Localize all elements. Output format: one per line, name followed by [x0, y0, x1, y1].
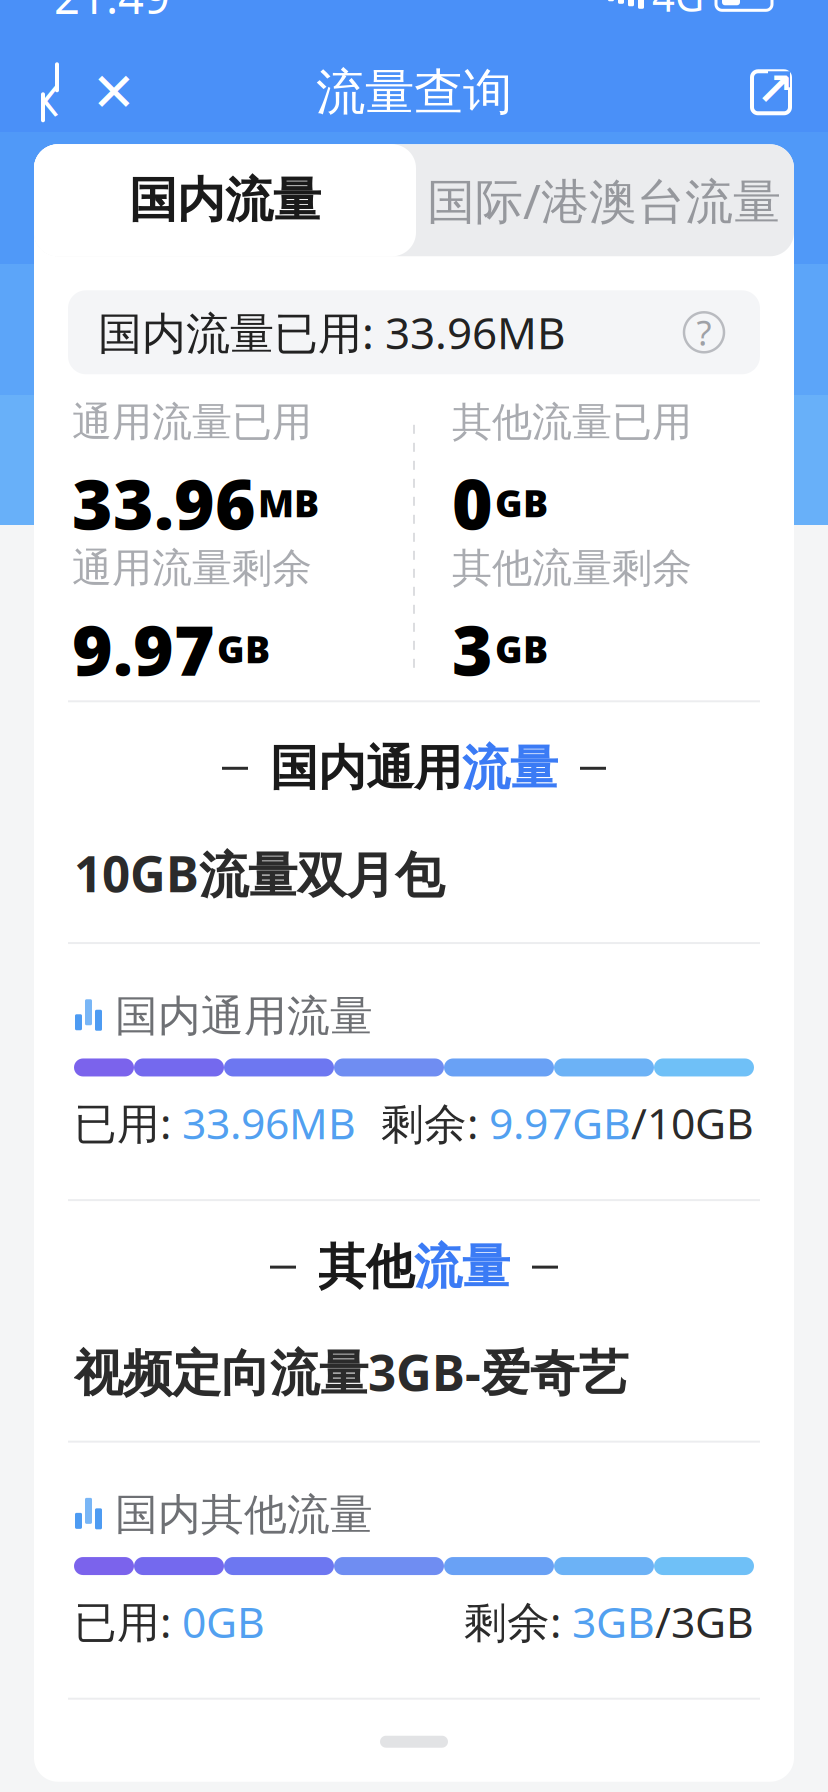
staticText: ↗: [756, 64, 794, 115]
button[interactable]: 国际/港澳台流量: [414, 144, 794, 256]
staticText: 国内流量已用: 33.96MB: [98, 303, 566, 361]
staticText: 已用:: [74, 1593, 182, 1650]
staticText: 国内流量: [129, 171, 321, 230]
staticText: 9.97GB: [489, 1094, 631, 1151]
button[interactable]: Help: [678, 306, 730, 358]
button[interactable]: Close: [82, 56, 146, 128]
staticText: 通用流量剩余: [72, 544, 312, 593]
staticText: MB: [258, 478, 319, 528]
staticText: 21:49: [54, 0, 170, 26]
staticText: ?: [696, 309, 711, 355]
staticText: 其他: [318, 1238, 414, 1297]
staticText: 0: [452, 457, 493, 549]
staticText: 其他流量剩余: [452, 544, 692, 593]
staticText: /10GB: [631, 1094, 754, 1151]
staticText: 国内其他流量: [115, 1489, 373, 1541]
staticText: 视频定向流量3GB-爱奇艺: [74, 1339, 628, 1405]
staticText: 国际/港澳台流量: [427, 168, 781, 232]
staticText: 国内通用: [270, 739, 462, 798]
staticText: GB: [495, 624, 548, 674]
staticText: 已用:: [74, 1094, 182, 1151]
staticText: 9.97: [72, 603, 215, 695]
staticText: 33.96MB: [182, 1094, 356, 1151]
button[interactable]: Back: [18, 56, 82, 128]
staticText: 10GB流量双月包: [74, 840, 444, 906]
staticText: 其他流量已用: [452, 398, 692, 447]
staticText: ‹: [40, 41, 60, 144]
staticText: /3GB: [655, 1593, 754, 1650]
staticText: 流量: [462, 739, 558, 798]
staticText: 4G: [652, 0, 704, 23]
staticText: 流量: [414, 1238, 510, 1297]
button[interactable]: 国内流量: [34, 144, 414, 256]
staticText: 剩余:: [381, 1094, 489, 1151]
staticText: 流量查询: [316, 62, 512, 123]
staticText: 3: [452, 603, 493, 695]
staticText: 3GB: [572, 1593, 655, 1650]
staticText: 通用流量已用: [72, 398, 312, 447]
staticText: 国内通用流量: [115, 990, 373, 1042]
staticText: GB: [495, 478, 548, 528]
button[interactable]: Share: [736, 56, 806, 128]
staticText: 国内流量: [128, 171, 320, 230]
staticText: GB: [217, 624, 270, 674]
staticText: ✕: [91, 62, 136, 122]
staticText: 0GB: [182, 1593, 265, 1650]
staticText: 33.96: [72, 457, 256, 549]
staticText: 剩余:: [464, 1593, 572, 1650]
